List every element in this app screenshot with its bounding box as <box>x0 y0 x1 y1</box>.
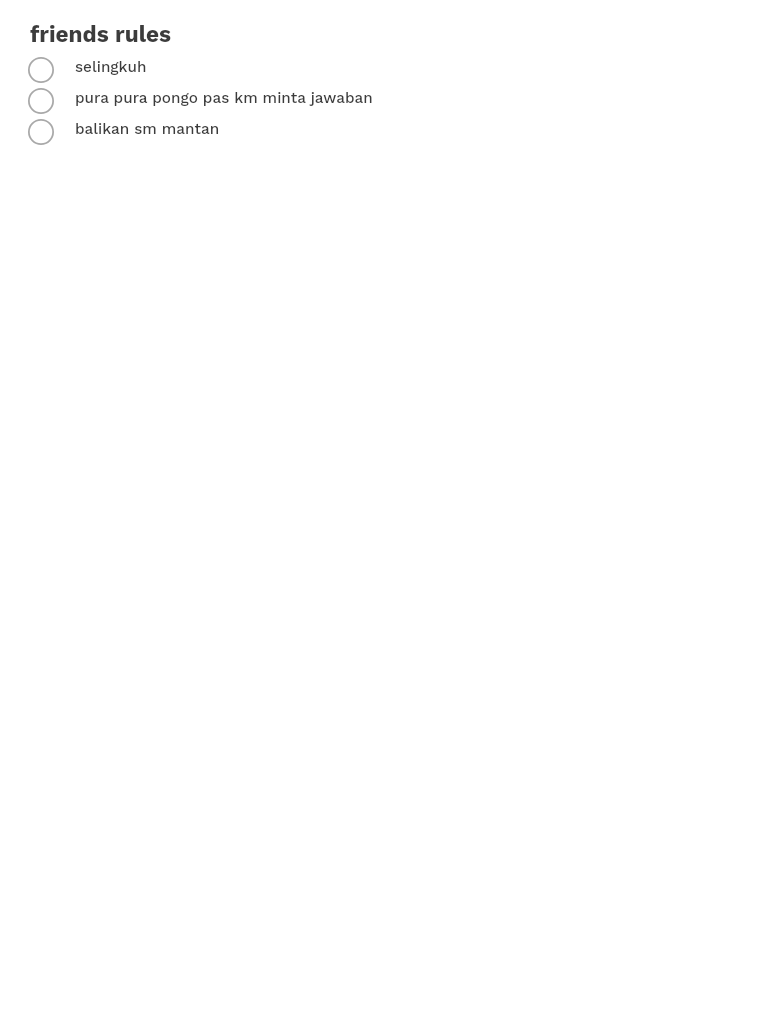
staticText: balikan sm mantan <box>75 120 220 138</box>
other: Toggle item <box>28 119 54 145</box>
other: Toggle item <box>28 57 54 83</box>
staticText: pura pura pongo pas km minta jawaban <box>75 89 373 107</box>
staticText: friends rules <box>30 21 172 47</box>
button[interactable]: Toggle item <box>0 116 768 147</box>
button[interactable]: Toggle item <box>0 85 768 116</box>
button[interactable]: Toggle item <box>0 54 768 85</box>
staticText: selingkuh <box>75 58 147 76</box>
other: Toggle item <box>28 88 54 114</box>
